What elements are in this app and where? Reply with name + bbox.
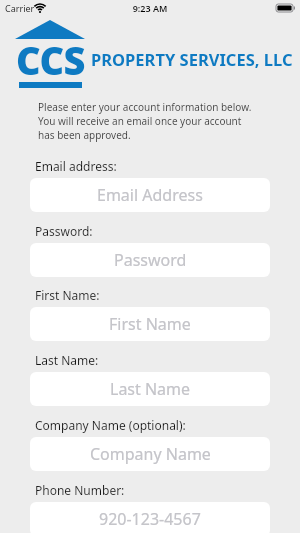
staticText: CCS — [16, 34, 85, 80]
button[interactable]: First Name — [30, 307, 270, 341]
staticText: First Name: — [35, 287, 100, 303]
button[interactable]: Last Name — [30, 372, 270, 406]
staticText: Password: — [35, 223, 93, 239]
button[interactable]: 920-123-4567 — [30, 502, 270, 533]
button[interactable]: Company Name — [30, 437, 270, 471]
staticText: Company Name — [90, 443, 211, 465]
staticText: 9:23 AM — [0, 2, 300, 14]
staticText: Password — [114, 249, 187, 271]
staticText: 920-123-4567 — [99, 508, 201, 530]
staticText: PROPERTY SERVICES, LLC — [91, 48, 293, 70]
button[interactable]: Email Address — [30, 178, 270, 212]
staticText: Please enter your account information be… — [38, 100, 252, 142]
staticText: Email address: — [35, 158, 117, 174]
staticText: Phone Number: — [35, 482, 125, 498]
staticText: Carrier — [5, 2, 35, 14]
staticText: Last Name — [110, 378, 191, 400]
staticText: First Name — [109, 313, 191, 335]
button[interactable]: Password — [30, 243, 270, 277]
staticText: Email Address — [97, 184, 203, 206]
staticText: Last Name: — [35, 352, 99, 368]
staticText: Company Name (optional): — [35, 417, 186, 433]
